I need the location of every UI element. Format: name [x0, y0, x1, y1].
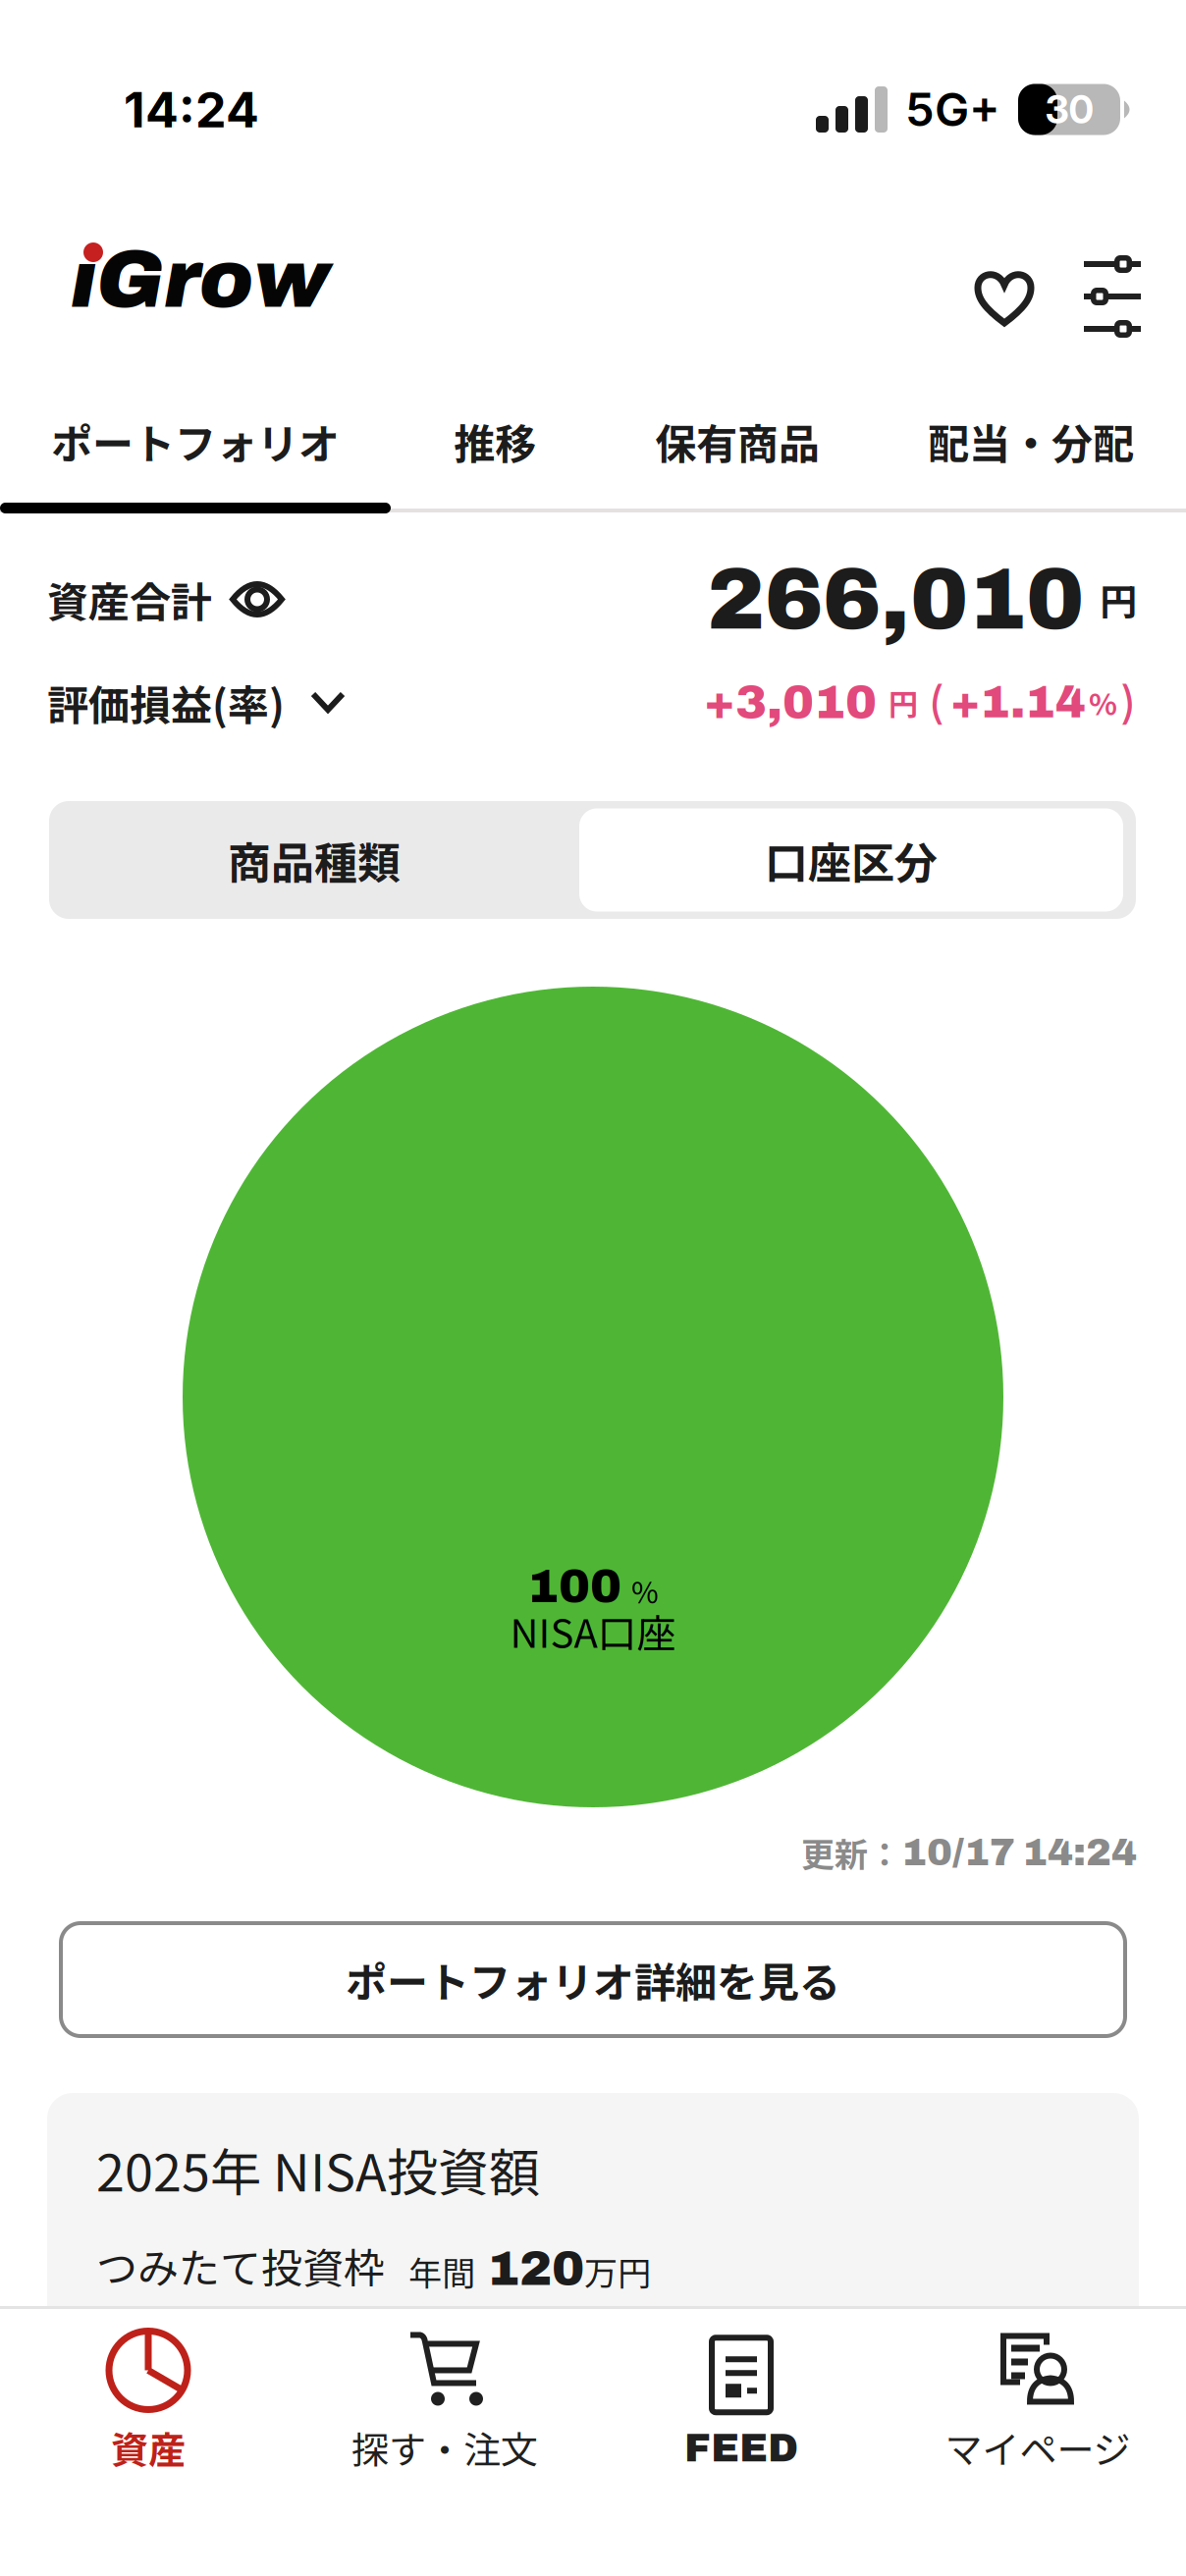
- staticText: %: [631, 1569, 659, 1612]
- staticText: マイページ: [945, 2420, 1131, 2474]
- staticText: 120: [487, 2242, 584, 2295]
- staticText: 10/17 14:24: [901, 1832, 1137, 1873]
- staticText: つみたて投資枠: [96, 2236, 385, 2295]
- staticText: (: [928, 675, 944, 730]
- staticText: 年間: [408, 2247, 475, 2295]
- staticText: 万円: [584, 2247, 651, 2295]
- button[interactable]: 絞り込み設定: [1058, 242, 1166, 350]
- staticText: 資産: [111, 2420, 186, 2474]
- button[interactable]: 探す・注文: [296, 2329, 593, 2476]
- staticText: iGrow: [71, 236, 330, 324]
- staticText: FEED: [684, 2427, 798, 2470]
- button[interactable]: マイページ: [889, 2329, 1186, 2476]
- button[interactable]: 保有商品: [599, 374, 876, 509]
- staticText: 保有商品: [655, 411, 820, 471]
- staticText: 円: [1100, 572, 1137, 626]
- staticText: 30: [1045, 86, 1093, 133]
- staticText: 14:24: [124, 80, 259, 139]
- staticText: ): [1120, 675, 1137, 730]
- staticText: 評価損益(率): [47, 673, 285, 732]
- staticText: 探す・注文: [351, 2420, 538, 2474]
- staticText: ポートフォリオ詳細を見る: [346, 1950, 840, 2009]
- staticText: 口座区分: [765, 829, 938, 891]
- staticText: 商品種類: [228, 829, 401, 891]
- button[interactable]: 配当・分配: [876, 374, 1186, 509]
- button[interactable]: 口座区分: [579, 808, 1123, 912]
- button[interactable]: お気に入り: [950, 242, 1058, 350]
- staticText: 266,010: [707, 552, 1084, 647]
- staticText: +3,010: [704, 677, 877, 728]
- button[interactable]: ポートフォリオ: [0, 374, 391, 509]
- button[interactable]: ポートフォリオ詳細を見る: [61, 1923, 1125, 2036]
- staticText: 100: [527, 1561, 621, 1612]
- staticText: ポートフォリオ: [51, 411, 340, 471]
- staticText: 推移: [454, 411, 536, 471]
- staticText: %: [1089, 681, 1117, 724]
- button[interactable]: 推移: [391, 374, 599, 509]
- staticText: +1.14: [950, 678, 1086, 727]
- button[interactable]: 資産: [0, 2329, 296, 2476]
- staticText: 更新：: [801, 1828, 901, 1877]
- staticText: 資産合計: [47, 569, 212, 629]
- staticText: 5G+: [905, 82, 1000, 137]
- staticText: 円: [889, 681, 918, 724]
- staticText: 2025年 NISA投資額: [96, 2132, 540, 2206]
- button[interactable]: FEED: [593, 2329, 889, 2476]
- staticText: 配当・分配: [928, 411, 1134, 471]
- button[interactable]: 商品種類: [49, 801, 579, 919]
- staticText: NISA口座: [510, 1602, 676, 1659]
